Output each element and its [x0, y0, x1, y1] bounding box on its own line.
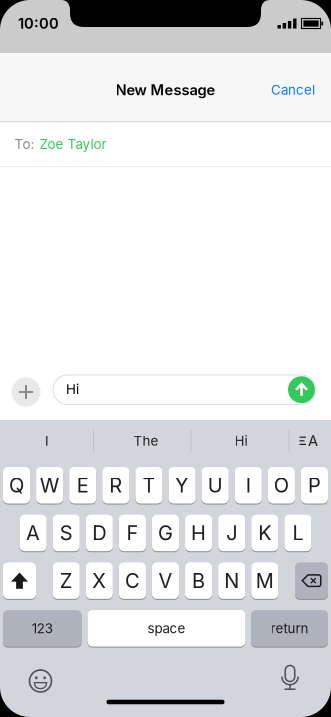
- staticText: O: [274, 473, 289, 497]
- button[interactable]: A: [20, 515, 47, 551]
- button[interactable]: [295, 562, 328, 599]
- button[interactable]: Cancel: [271, 82, 315, 98]
- staticText: G: [158, 521, 173, 545]
- staticText: L: [292, 521, 303, 545]
- staticText: Q: [9, 473, 24, 497]
- staticText: U: [208, 473, 223, 497]
- button[interactable]: Y: [168, 467, 196, 503]
- button[interactable]: D: [86, 515, 113, 551]
- button[interactable]: G: [152, 515, 179, 551]
- button[interactable]: S: [53, 515, 80, 551]
- staticText: Hi: [66, 382, 79, 397]
- staticText: 123: [32, 620, 53, 636]
- button[interactable]: J: [218, 515, 245, 551]
- staticText: J: [226, 521, 237, 545]
- button[interactable]: P: [301, 467, 328, 503]
- button[interactable]: U: [202, 467, 229, 503]
- staticText: I: [45, 433, 49, 449]
- staticText: A: [26, 521, 40, 545]
- button[interactable]: [278, 665, 302, 695]
- staticText: Y: [175, 473, 189, 497]
- staticText: M: [256, 569, 274, 592]
- button[interactable]: O: [268, 467, 295, 503]
- button[interactable]: 123: [3, 610, 81, 647]
- staticText: H: [191, 521, 206, 545]
- button[interactable]: V: [152, 562, 179, 599]
- staticText: R: [109, 473, 122, 497]
- button[interactable]: I: [7, 421, 87, 461]
- button[interactable]: [3, 562, 36, 599]
- staticText: T: [142, 473, 155, 497]
- button[interactable]: T: [135, 467, 162, 503]
- button[interactable]: Q: [3, 467, 30, 503]
- staticText: X: [92, 569, 106, 592]
- button[interactable]: B: [185, 562, 212, 599]
- button[interactable]: [25, 666, 55, 696]
- button[interactable]: Hi: [201, 421, 281, 461]
- staticText: B: [192, 569, 205, 592]
- button[interactable]: C: [119, 562, 146, 599]
- button[interactable]: F: [119, 515, 146, 551]
- staticText: D: [92, 521, 106, 545]
- staticText: 10:00: [18, 15, 59, 32]
- button[interactable]: A: [296, 430, 322, 452]
- staticText: F: [126, 521, 138, 545]
- button[interactable]: [11, 377, 40, 406]
- staticText: Hi: [234, 433, 247, 449]
- button[interactable]: [288, 376, 315, 403]
- staticText: space: [147, 620, 185, 636]
- button[interactable]: space: [87, 610, 245, 647]
- button[interactable]: N: [218, 562, 245, 599]
- button[interactable]: X: [86, 562, 113, 599]
- staticText: V: [158, 569, 172, 592]
- button[interactable]: I: [235, 467, 262, 503]
- staticText: The: [133, 433, 158, 449]
- button[interactable]: M: [251, 562, 278, 599]
- staticText: C: [125, 569, 140, 592]
- staticText: New Message: [115, 81, 215, 99]
- button[interactable]: R: [102, 467, 129, 503]
- button[interactable]: Z: [53, 562, 80, 599]
- staticText: Cancel: [271, 82, 315, 98]
- staticText: Zoe Taylor: [39, 136, 106, 152]
- button[interactable]: [53, 375, 316, 404]
- staticText: To:: [14, 136, 34, 152]
- button[interactable]: return: [251, 610, 328, 647]
- button[interactable]: K: [251, 515, 278, 551]
- button[interactable]: L: [284, 515, 311, 551]
- staticText: P: [308, 473, 321, 497]
- staticText: return: [270, 620, 308, 636]
- button[interactable]: To:: [0, 122, 331, 166]
- staticText: W: [40, 473, 60, 497]
- staticText: Z: [60, 569, 73, 592]
- staticText: S: [60, 521, 73, 545]
- button[interactable]: E: [69, 467, 96, 503]
- staticText: E: [77, 473, 89, 497]
- staticText: A: [308, 432, 318, 450]
- staticText: I: [246, 473, 251, 497]
- button[interactable]: H: [185, 515, 212, 551]
- button[interactable]: The: [106, 421, 186, 461]
- staticText: K: [258, 521, 271, 545]
- staticText: N: [224, 569, 239, 592]
- button[interactable]: W: [36, 467, 63, 503]
